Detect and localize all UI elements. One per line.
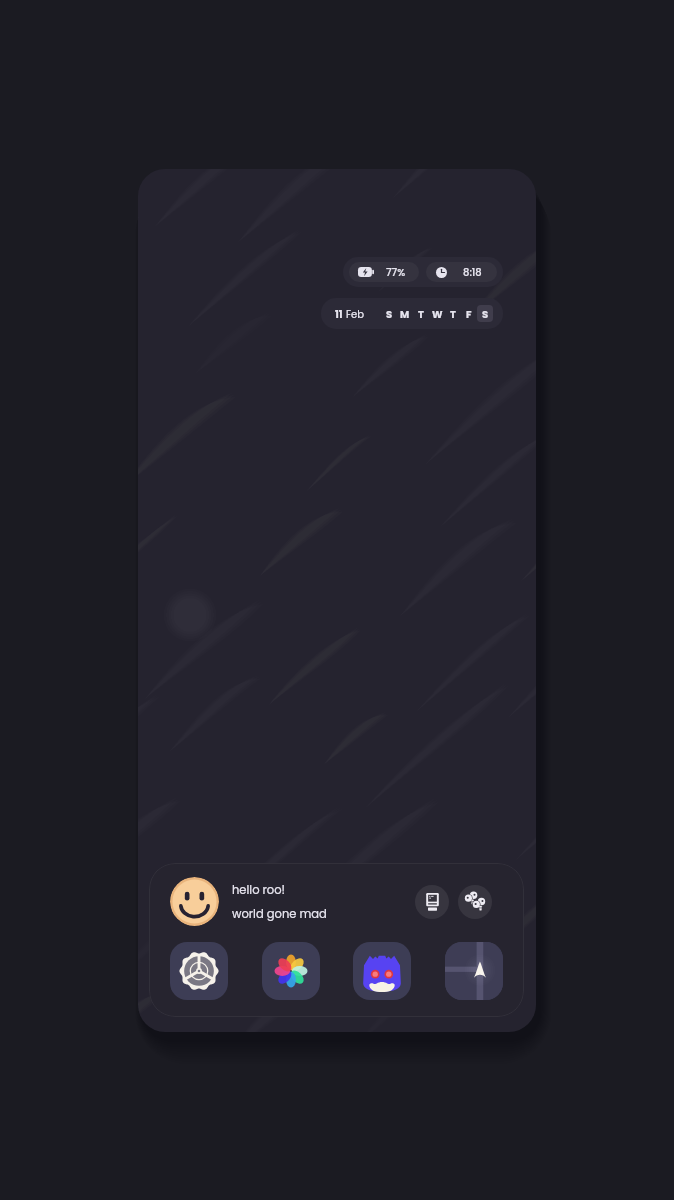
staticText: 77%	[386, 265, 406, 279]
staticText: M	[400, 307, 410, 321]
staticText: S	[482, 307, 489, 321]
staticText: T	[418, 307, 424, 321]
other: Profile	[170, 877, 219, 926]
staticText: W	[432, 307, 443, 321]
button[interactable]: Chat	[353, 942, 411, 1000]
staticText: world gone mad	[232, 906, 327, 922]
staticText: F	[466, 307, 472, 321]
button[interactable]: Settings	[170, 942, 228, 1000]
staticText: hello roo!	[232, 882, 286, 898]
button[interactable]: 11	[321, 298, 503, 329]
button[interactable]: Maps	[445, 942, 503, 1000]
button[interactable]: Photos	[262, 942, 320, 1000]
staticText: 8:18	[463, 265, 482, 279]
staticText: Feb	[346, 307, 364, 321]
staticText: S	[386, 307, 393, 321]
staticText: 11	[335, 307, 343, 321]
button[interactable]: Computer	[415, 885, 449, 919]
button[interactable]: Profile	[170, 877, 327, 926]
staticText: T	[450, 307, 456, 321]
button[interactable]: 77%	[343, 257, 503, 287]
button[interactable]: Balloons	[458, 885, 492, 919]
